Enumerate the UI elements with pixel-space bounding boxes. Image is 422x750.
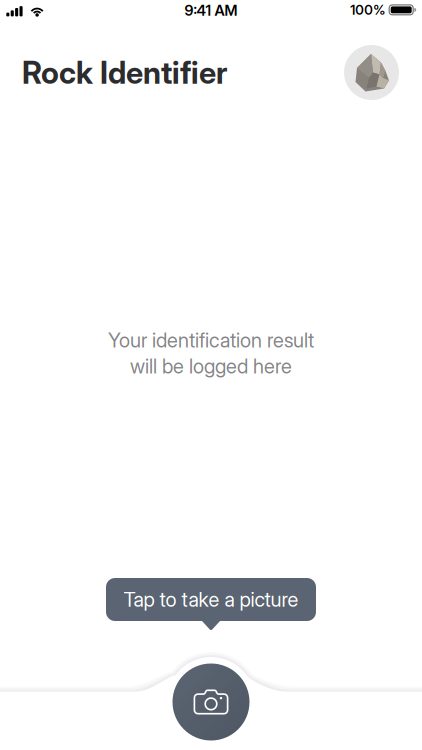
button[interactable]: Take a picture bbox=[172, 663, 249, 740]
staticText: Rock Identifier bbox=[22, 54, 227, 91]
staticText: 100% bbox=[350, 2, 385, 18]
staticText: Your identification result bbox=[108, 328, 314, 352]
staticText: Tap to take a picture bbox=[123, 587, 298, 612]
button[interactable]: Profile bbox=[344, 45, 399, 100]
staticText: will be logged here bbox=[130, 354, 292, 378]
button[interactable]: Tap to take a picture bbox=[106, 578, 316, 630]
staticText: 9:41 AM bbox=[184, 1, 237, 19]
